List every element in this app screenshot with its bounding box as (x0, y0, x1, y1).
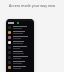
button[interactable]: row icon (6, 25, 34, 30)
button[interactable]: row icon (6, 60, 34, 65)
button[interactable]: row icon (6, 40, 34, 45)
other: row icon (8, 26, 11, 29)
button[interactable]: row icon (6, 65, 34, 70)
other: row icon (8, 56, 11, 59)
other: row icon (8, 31, 11, 34)
other: row icon (8, 41, 11, 44)
other: row icon (8, 46, 11, 49)
staticText: Access made your way now (0, 3, 64, 8)
button[interactable]: row icon (6, 45, 34, 50)
button[interactable]: row icon (6, 50, 34, 55)
button[interactable]: row icon (6, 30, 34, 35)
other: row icon (8, 51, 11, 54)
other: row icon (8, 36, 11, 39)
other: row icon (8, 61, 11, 64)
other: row icon (8, 66, 11, 69)
button[interactable]: row icon (6, 55, 34, 60)
button[interactable]: row icon (6, 35, 34, 40)
